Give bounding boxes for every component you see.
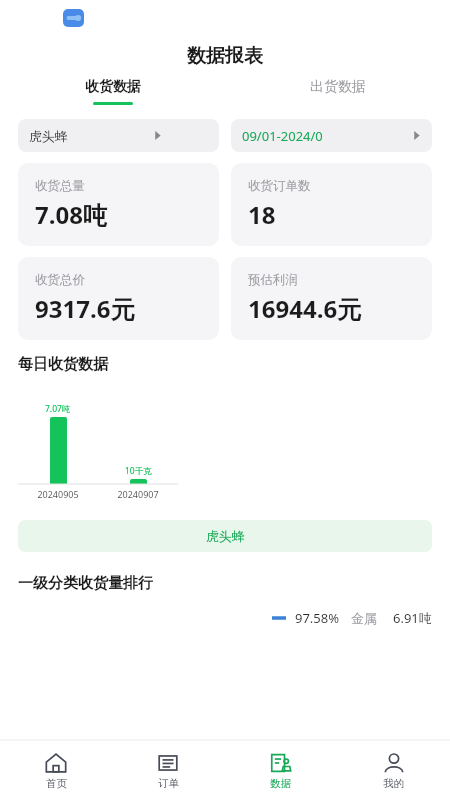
button[interactable]: Notification xyxy=(63,9,84,27)
staticText: 20240907 xyxy=(117,488,159,500)
staticText: 09/01-2024/09/3 xyxy=(242,127,327,145)
button[interactable]: 虎头蜂 xyxy=(18,520,432,552)
staticText: 订单 xyxy=(158,777,179,790)
button[interactable]: 收货总价 xyxy=(18,257,219,340)
staticText: 一级分类收货量排行 xyxy=(18,574,153,593)
button[interactable]: 收货总量 xyxy=(18,163,219,246)
staticText: 97.58% xyxy=(295,609,340,627)
staticText: 收货总量 xyxy=(35,178,85,194)
staticText: 虎头蜂 xyxy=(29,128,68,144)
staticText: 6.91吨 xyxy=(393,609,432,627)
staticText: 18 xyxy=(248,198,276,231)
staticText: 出货数据 xyxy=(310,78,366,96)
button[interactable]: 预估利润 xyxy=(231,257,432,340)
button[interactable]: 订单 xyxy=(112,741,224,800)
button[interactable]: 首页 xyxy=(0,741,112,800)
staticText: 9317.6元 xyxy=(35,292,135,325)
staticText: 20240905 xyxy=(37,488,79,500)
button[interactable]: 虎头蜂 xyxy=(18,119,219,152)
staticText: 数据报表 xyxy=(187,44,263,68)
staticText: 收货数据 xyxy=(85,78,141,96)
staticText: 7.08吨 xyxy=(35,198,107,231)
staticText: 虎头蜂 xyxy=(206,528,245,544)
button[interactable]: 收货数据 xyxy=(0,74,225,110)
button[interactable]: 09/01-2024/09/3 xyxy=(231,119,432,152)
staticText: 收货订单数 xyxy=(248,178,311,194)
staticText: 首页 xyxy=(46,777,67,790)
staticText: 7.07吨 xyxy=(45,403,71,415)
button[interactable]: 收货订单数 xyxy=(231,163,432,246)
button[interactable]: 出货数据 xyxy=(225,74,450,110)
staticText: 每日收货数据 xyxy=(18,355,108,374)
staticText: 10千克 xyxy=(125,465,152,477)
staticText: 预估利润 xyxy=(248,272,298,288)
button[interactable]: 我的 xyxy=(337,741,450,800)
staticText: 数据 xyxy=(270,777,291,790)
staticText: 16944.6元 xyxy=(248,292,362,325)
staticText: 收货总价 xyxy=(35,272,85,288)
button[interactable]: 数据 xyxy=(224,741,337,800)
staticText: 我的 xyxy=(383,777,404,790)
staticText: 金属 xyxy=(351,610,377,626)
